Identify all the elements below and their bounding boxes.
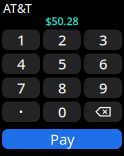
button[interactable]: Pay	[2, 129, 122, 149]
staticText: Pay	[50, 129, 74, 149]
button[interactable]: 3	[84, 29, 122, 50]
button[interactable]: 8	[43, 77, 81, 98]
button[interactable]: Decimal point	[2, 101, 40, 122]
button[interactable]: 7	[2, 77, 40, 98]
button[interactable]: 9	[84, 77, 122, 98]
staticText: 1	[17, 30, 25, 49]
staticText: 6	[99, 54, 107, 73]
button[interactable]: 1	[2, 29, 40, 50]
staticText: 7	[17, 78, 25, 97]
staticText: 8	[58, 78, 66, 97]
staticText: 3	[99, 30, 107, 49]
staticText: 5	[58, 54, 66, 73]
button[interactable]: 0	[43, 101, 81, 122]
staticText: 0	[58, 102, 66, 121]
button[interactable]: 5	[43, 53, 81, 74]
button[interactable]: 2	[43, 29, 81, 50]
staticText: 9	[99, 78, 107, 97]
button[interactable]: Delete	[84, 101, 122, 122]
button[interactable]: 6	[84, 53, 122, 74]
button[interactable]: 4	[2, 53, 40, 74]
staticText: AT&T	[3, 0, 32, 16]
staticText: $50.28	[45, 14, 78, 28]
staticText: 4	[17, 54, 25, 73]
staticText: 2	[58, 30, 66, 49]
